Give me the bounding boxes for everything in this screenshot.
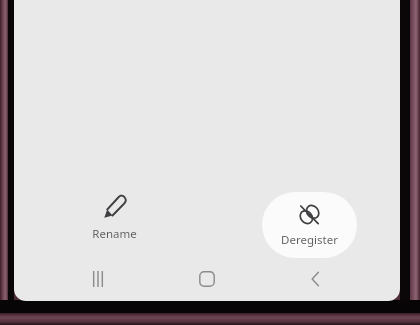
button[interactable]: Home (183, 256, 231, 301)
button[interactable]: Rename (69, 194, 159, 252)
staticText: Deregister (281, 232, 338, 248)
staticText: Rename (92, 226, 137, 242)
other: Deregister (298, 203, 321, 226)
button[interactable]: Deregister (262, 192, 357, 258)
button[interactable]: Back (292, 256, 340, 301)
button[interactable]: Recents (74, 256, 122, 301)
